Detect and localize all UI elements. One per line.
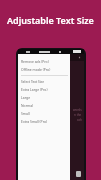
button[interactable]: More options xyxy=(78,56,81,59)
staticText: Normal xyxy=(21,103,33,108)
button[interactable]: Action xyxy=(76,171,81,177)
button[interactable]: Extra Large (Pro) xyxy=(21,85,68,93)
staticText: Extra Large (Pro) xyxy=(21,87,48,92)
staticText: Remove ads (Pro) xyxy=(21,59,49,64)
staticText: Offline mode (Pro) xyxy=(21,67,51,72)
button[interactable]: Large xyxy=(21,93,68,101)
staticText: words xyxy=(73,108,82,112)
staticText: n the xyxy=(74,113,82,117)
staticText: Extra Small (Pro) xyxy=(21,119,48,124)
button[interactable]: Extra Small (Pro) xyxy=(21,117,68,125)
button[interactable]: Remove ads (Pro) xyxy=(21,57,68,65)
staticText: Large xyxy=(21,95,31,100)
staticText: ach xyxy=(77,118,82,122)
staticText: Adjustable Text Size xyxy=(7,14,94,26)
button[interactable]: Small xyxy=(21,109,68,117)
staticText: Small xyxy=(21,111,30,116)
button[interactable]: Offline mode (Pro) xyxy=(21,65,68,73)
staticText: Select Text Size xyxy=(21,80,44,84)
button[interactable]: Normal xyxy=(21,101,68,109)
